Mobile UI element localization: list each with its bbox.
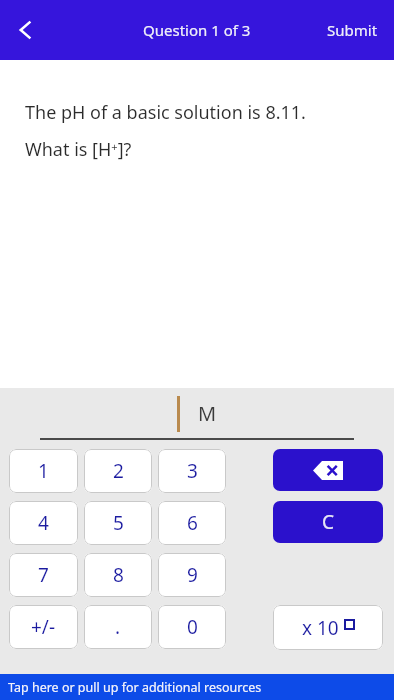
button[interactable]: . (84, 605, 152, 649)
button[interactable]: 1 (9, 449, 78, 493)
staticText: C (322, 509, 335, 535)
button[interactable]: Tap here or pull up for additional resou… (0, 674, 394, 700)
button[interactable]: C (273, 501, 383, 543)
staticText: x 10 (302, 615, 339, 641)
staticText: . (115, 614, 121, 640)
button[interactable]: 4 (9, 501, 78, 545)
staticText: The pH of a basic solution is 8.11. What… (25, 100, 306, 161)
button[interactable]: 2 (84, 449, 152, 493)
staticText: 8 (113, 562, 124, 588)
staticText: +/- (31, 614, 56, 640)
button[interactable]: 8 (84, 553, 152, 597)
button[interactable]: Backspace (273, 449, 383, 491)
button[interactable]: x 10 (273, 605, 383, 650)
staticText: 9 (187, 562, 198, 588)
button[interactable]: 6 (158, 501, 226, 545)
staticText: 0 (187, 614, 198, 640)
staticText: 3 (187, 458, 198, 484)
staticText: M (198, 400, 217, 427)
button[interactable]: +/- (9, 605, 78, 649)
staticText: Tap here or pull up for additional resou… (8, 679, 262, 696)
staticText: 7 (38, 562, 49, 588)
button[interactable]: 9 (158, 553, 226, 597)
staticText: Submit (327, 20, 378, 40)
staticText: 2 (113, 458, 124, 484)
staticText: 6 (187, 510, 198, 536)
staticText: Question 1 of 3 (143, 20, 251, 40)
button[interactable]: Submit (311, 8, 394, 52)
staticText: 4 (38, 510, 49, 536)
button[interactable]: 0 (158, 605, 226, 649)
staticText: 5 (113, 510, 124, 536)
button[interactable]: 7 (9, 553, 78, 597)
button[interactable]: 5 (84, 501, 152, 545)
button[interactable]: Back (4, 8, 48, 52)
button[interactable]: 3 (158, 449, 226, 493)
staticText: 1 (38, 458, 49, 484)
